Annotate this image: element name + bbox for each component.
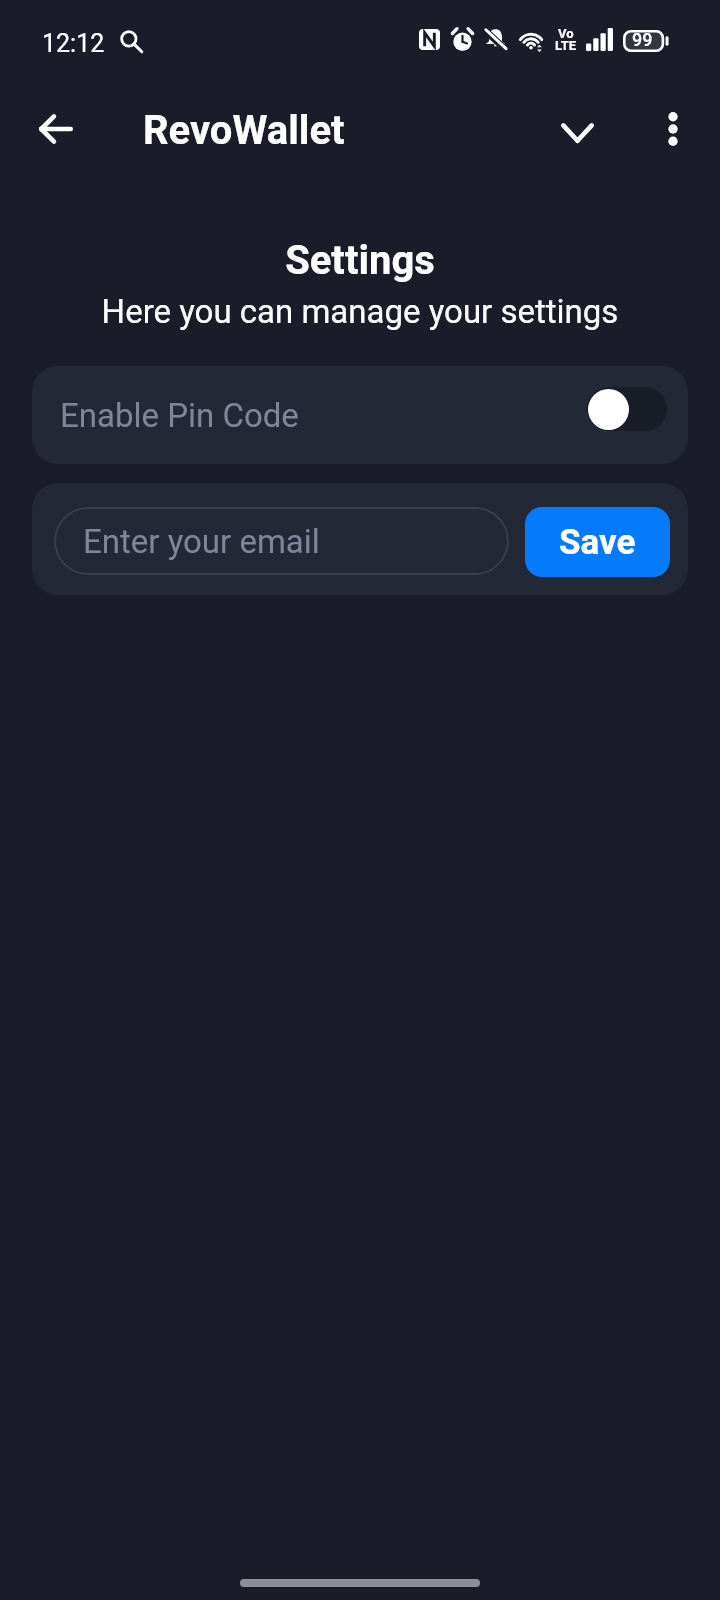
staticText: Settings bbox=[0, 237, 720, 284]
staticText: 99 bbox=[632, 29, 653, 50]
button[interactable]: More options bbox=[642, 98, 704, 160]
button[interactable]: Search bbox=[117, 27, 145, 55]
button[interactable]: Expand bbox=[546, 101, 608, 163]
button[interactable]: Enable Pin Code bbox=[32, 366, 688, 464]
staticText: Enter your email bbox=[83, 522, 320, 561]
staticText: LTE bbox=[555, 38, 577, 53]
staticText: Here you can manage your settings bbox=[0, 292, 720, 331]
button[interactable]: Enter your email bbox=[54, 507, 509, 575]
button[interactable]: Save bbox=[525, 507, 670, 577]
staticText: Enable Pin Code bbox=[60, 396, 299, 435]
staticText: Vo bbox=[558, 26, 574, 41]
button[interactable]: Enable Pin Code bbox=[587, 387, 667, 431]
staticText: 12:12 bbox=[42, 29, 105, 58]
staticText: RevoWallet bbox=[143, 107, 345, 154]
button[interactable]: Back bbox=[26, 99, 86, 159]
staticText: Save bbox=[559, 522, 636, 563]
